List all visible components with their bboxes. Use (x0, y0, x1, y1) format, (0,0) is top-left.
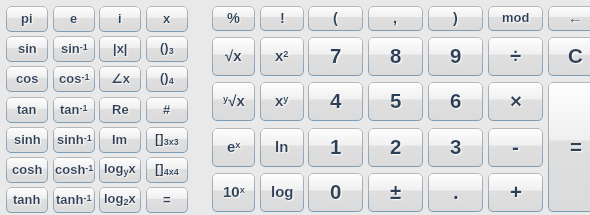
button[interactable]: cosh (6, 157, 48, 183)
button[interactable]: 7 (308, 37, 363, 76)
staticText: 9 (450, 44, 462, 67)
staticText: Re (112, 102, 129, 117)
button[interactable]: × (488, 82, 543, 121)
button[interactable]: 4 (308, 82, 363, 121)
staticText: ± (390, 180, 402, 203)
button[interactable]: cos-1 (53, 66, 95, 92)
button[interactable]: sinh-1 (53, 127, 95, 153)
button[interactable]: 10x (212, 173, 255, 212)
button[interactable]: sin-1 (53, 36, 95, 62)
staticText: e (70, 11, 78, 26)
staticText: ()4 (160, 70, 174, 86)
button[interactable]: # (146, 97, 188, 123)
button[interactable]: = (146, 187, 188, 213)
button[interactable]: ÷ (488, 37, 543, 76)
button[interactable]: Re (99, 97, 141, 123)
button[interactable]: tan (6, 97, 48, 123)
staticText: + (510, 180, 522, 203)
staticText: y√x (223, 92, 245, 109)
button[interactable]: Im (99, 127, 141, 153)
button[interactable]: []4x4 (146, 157, 188, 183)
button[interactable]: tanh-1 (53, 187, 95, 213)
staticText: 2 (390, 135, 402, 158)
button[interactable]: ()3 (146, 36, 188, 62)
staticText: sinh-1 (57, 132, 92, 147)
button[interactable]: ) (428, 6, 483, 31)
staticText: ()3 (160, 40, 174, 56)
button[interactable]: √x (212, 37, 255, 76)
staticText: cos (16, 71, 39, 86)
button[interactable]: x2 (260, 37, 304, 76)
button[interactable]: logyx (99, 157, 141, 183)
button[interactable]: e (53, 6, 95, 32)
button[interactable]: x (146, 6, 188, 32)
button[interactable]: ( (308, 6, 363, 31)
button[interactable]: 5 (368, 82, 423, 121)
staticText: 4 (330, 89, 342, 112)
staticText: logyx (104, 161, 136, 177)
staticText: tanh (13, 192, 41, 207)
button[interactable]: log (260, 173, 304, 212)
button[interactable]: |x| (99, 36, 141, 62)
button[interactable]: , (368, 6, 423, 31)
staticText: i (118, 11, 122, 26)
staticText: sin-1 (61, 41, 88, 56)
staticText: 6 (450, 89, 462, 112)
button[interactable]: y√x (212, 82, 255, 121)
staticText: ln (275, 138, 289, 155)
staticText: log2x (104, 191, 136, 207)
staticText: ∠x (111, 71, 130, 86)
button[interactable]: tan-1 (53, 97, 95, 123)
button[interactable]: xy (260, 82, 304, 121)
button[interactable]: sin (6, 36, 48, 62)
staticText: ) (453, 10, 458, 26)
staticText: log (271, 183, 294, 200)
button[interactable]: pi (6, 6, 48, 32)
button[interactable]: mod (488, 6, 543, 31)
button[interactable]: tanh (6, 187, 48, 213)
staticText: sinh (14, 132, 41, 147)
staticText: 3 (450, 135, 462, 158)
button[interactable]: 9 (428, 37, 483, 76)
button[interactable]: 3 (428, 128, 483, 167)
button[interactable]: 0 (308, 173, 363, 212)
button[interactable]: cosh-1 (53, 157, 95, 183)
staticText: ← (568, 10, 583, 26)
button[interactable]: 2 (368, 128, 423, 167)
button[interactable]: - (488, 128, 543, 167)
button[interactable]: []3x3 (146, 127, 188, 153)
button[interactable]: ± (368, 173, 423, 212)
button[interactable]: sinh (6, 127, 48, 153)
staticText: sin (18, 41, 37, 56)
button[interactable]: i (99, 6, 141, 32)
staticText: √x (225, 47, 242, 64)
staticText: x (163, 11, 171, 26)
button[interactable]: . (428, 173, 483, 212)
button[interactable]: cos (6, 66, 48, 92)
staticText: mod (502, 10, 530, 25)
staticText: ÷ (510, 44, 522, 67)
button[interactable]: = (548, 82, 590, 212)
button[interactable]: log2x (99, 187, 141, 213)
staticText: 0 (330, 180, 342, 203)
button[interactable]: Backspace (548, 6, 590, 31)
button[interactable]: ! (260, 6, 304, 31)
staticText: |x| (113, 41, 128, 56)
staticText: - (512, 135, 519, 158)
staticText: []4x4 (155, 161, 179, 177)
button[interactable]: % (212, 6, 255, 31)
staticText: C (568, 44, 583, 67)
staticText: × (510, 89, 522, 112)
button[interactable]: 6 (428, 82, 483, 121)
staticText: = (163, 192, 171, 207)
staticText: tan (17, 102, 37, 117)
button[interactable]: 8 (368, 37, 423, 76)
button[interactable]: ()4 (146, 66, 188, 92)
button[interactable]: ex (212, 128, 255, 167)
button[interactable]: ln (260, 128, 304, 167)
button[interactable]: ∠x (99, 66, 141, 92)
staticText: . (453, 180, 459, 203)
button[interactable]: + (488, 173, 543, 212)
button[interactable]: C (548, 37, 590, 76)
button[interactable]: 1 (308, 128, 363, 167)
